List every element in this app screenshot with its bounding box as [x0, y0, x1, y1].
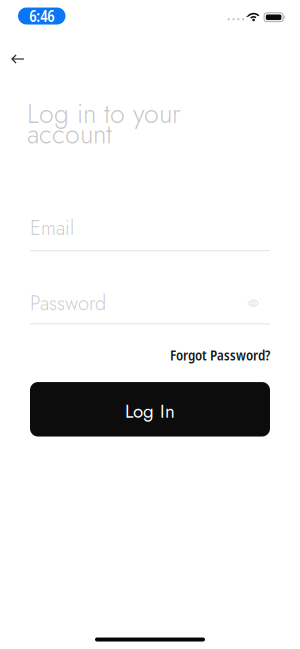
button[interactable]: Back [5, 46, 30, 71]
button[interactable]: Log In [30, 382, 270, 436]
staticText: Email [30, 214, 74, 242]
button[interactable]: Show password [247, 299, 270, 307]
staticText: Password [30, 289, 106, 318]
staticText: 6:46 [29, 6, 54, 26]
staticText: Forgot Password? [170, 345, 270, 365]
staticText: Log in to your [27, 94, 181, 133]
staticText: account [27, 115, 112, 153]
button[interactable]: Forgot Password? [170, 345, 270, 365]
staticText: Log In [125, 398, 175, 425]
